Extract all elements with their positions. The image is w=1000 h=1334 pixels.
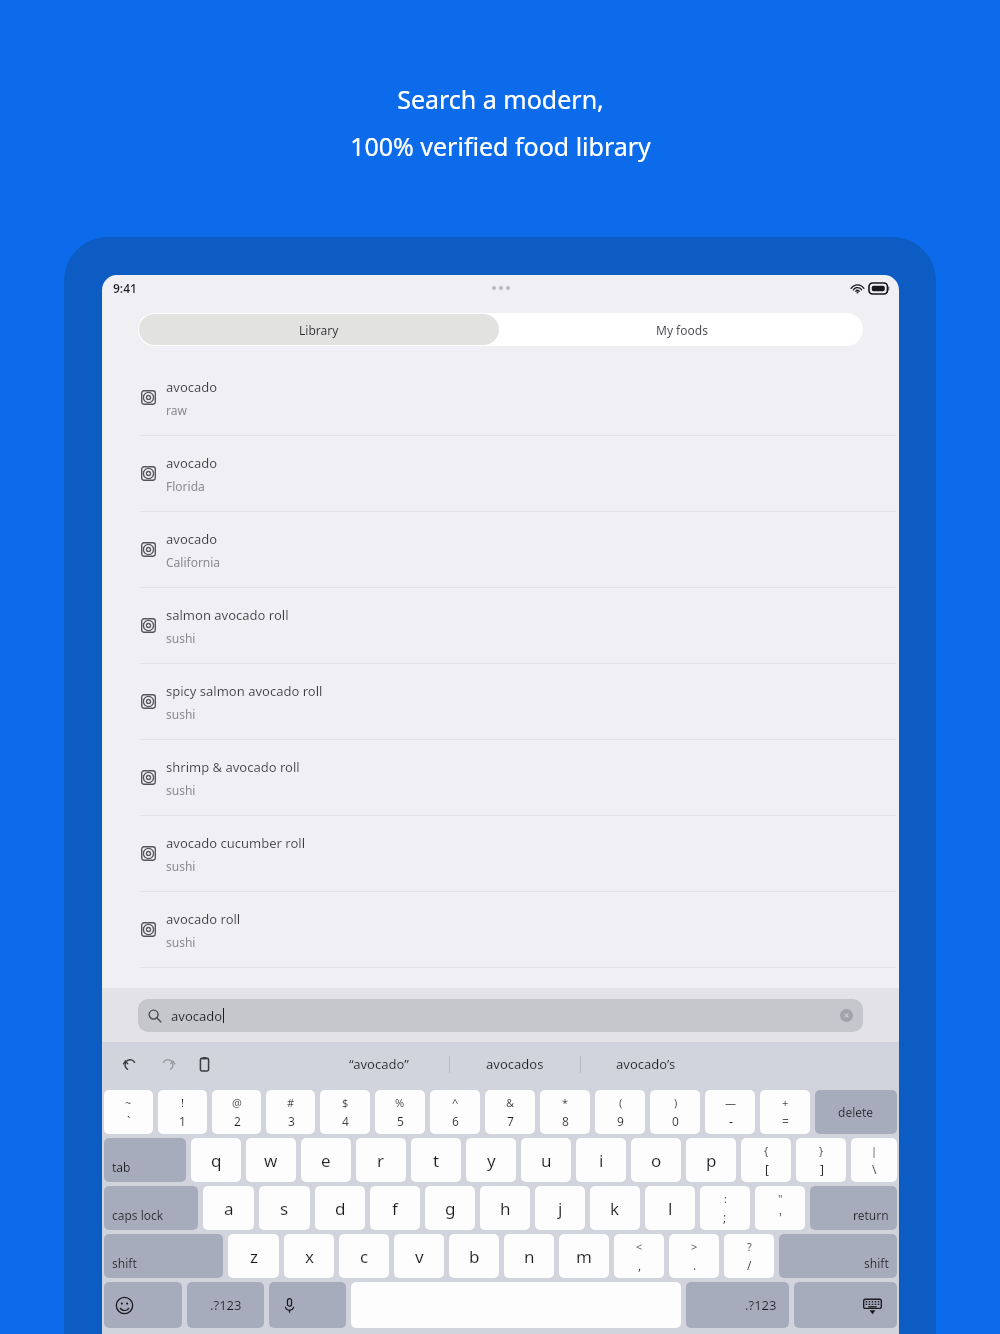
staticText: " <box>778 1191 783 1206</box>
button[interactable]: b <box>449 1234 499 1278</box>
button[interactable]: ^ <box>430 1090 480 1134</box>
staticText: @ <box>232 1095 242 1110</box>
button[interactable]: avocado <box>102 360 899 435</box>
button[interactable]: q <box>191 1138 241 1182</box>
button[interactable]: .?123 <box>686 1282 789 1328</box>
button[interactable]: * <box>540 1090 590 1134</box>
staticText: My foods <box>656 322 708 338</box>
staticText: ] <box>820 1161 824 1177</box>
button[interactable]: m <box>559 1234 609 1278</box>
button[interactable]: avocado smoothie <box>102 968 899 1043</box>
staticText: 7 <box>507 1113 514 1129</box>
staticText: / <box>747 1257 752 1273</box>
button[interactable]: } <box>796 1138 846 1182</box>
button[interactable]: f <box>370 1186 420 1230</box>
button[interactable]: shrimp & avocado roll <box>102 740 899 815</box>
button[interactable]: x <box>284 1234 334 1278</box>
button[interactable]: ? <box>724 1234 774 1278</box>
staticText: .?123 <box>745 1296 777 1314</box>
button[interactable]: o <box>631 1138 681 1182</box>
button[interactable]: avocado’s <box>581 1055 711 1073</box>
staticText: 9:41 <box>113 280 137 296</box>
staticText: p <box>706 1149 717 1172</box>
button[interactable]: return <box>810 1186 897 1230</box>
button[interactable]: e <box>301 1138 351 1182</box>
button[interactable]: avocado <box>138 999 863 1032</box>
button[interactable]: ) <box>650 1090 700 1134</box>
button[interactable]: spicy salmon avocado roll <box>102 664 899 739</box>
button[interactable]: r <box>356 1138 406 1182</box>
staticText: ? <box>747 1239 752 1254</box>
button[interactable]: shift <box>779 1234 897 1278</box>
staticText: avocado smoothie <box>166 986 279 1004</box>
button[interactable]: a <box>203 1186 254 1230</box>
button[interactable]: g <box>425 1186 475 1230</box>
button[interactable]: | <box>851 1138 897 1182</box>
button[interactable]: avocado <box>102 436 899 511</box>
button[interactable]: + <box>760 1090 810 1134</box>
button[interactable]: @ <box>212 1090 261 1134</box>
button[interactable]: ~ <box>104 1090 153 1134</box>
button[interactable]: My foods <box>500 313 863 346</box>
button[interactable]: avocado cucumber roll <box>102 816 899 891</box>
button[interactable]: i <box>576 1138 626 1182</box>
button[interactable]: salmon avocado roll <box>102 588 899 663</box>
button[interactable]: Library <box>139 314 499 345</box>
button[interactable]: Emoji <box>104 1282 182 1328</box>
button[interactable]: Undo <box>119 1053 141 1075</box>
staticText: sushi <box>166 706 196 722</box>
staticText: } <box>819 1143 824 1158</box>
button[interactable]: avocado roll <box>102 892 899 967</box>
button[interactable]: j <box>535 1186 585 1230</box>
button[interactable]: $ <box>320 1090 370 1134</box>
button[interactable]: .?123 <box>187 1282 264 1328</box>
button[interactable]: s <box>259 1186 310 1230</box>
staticText: z <box>250 1245 258 1268</box>
button[interactable]: " <box>755 1186 805 1230</box>
button[interactable]: “avocado” <box>309 1055 449 1073</box>
button[interactable]: shift <box>104 1234 223 1278</box>
button[interactable]: # <box>266 1090 315 1134</box>
button[interactable]: & <box>485 1090 535 1134</box>
staticText: q <box>211 1149 222 1172</box>
button[interactable]: ! <box>158 1090 207 1134</box>
button[interactable]: < <box>614 1234 664 1278</box>
button[interactable]: h <box>480 1186 530 1230</box>
staticText: drink <box>166 1010 196 1026</box>
button[interactable]: tab <box>104 1138 186 1182</box>
button[interactable]: % <box>375 1090 425 1134</box>
staticText: 8 <box>562 1113 569 1129</box>
button[interactable]: Redo <box>156 1053 178 1075</box>
staticText: l <box>668 1197 673 1220</box>
button[interactable]: k <box>590 1186 640 1230</box>
button[interactable]: Hide keyboard <box>794 1282 897 1328</box>
button[interactable]: avocados <box>450 1055 580 1073</box>
button[interactable]: delete <box>815 1090 897 1134</box>
button[interactable]: Clear search <box>840 1009 853 1022</box>
button[interactable]: { <box>741 1138 791 1182</box>
button[interactable]: v <box>394 1234 444 1278</box>
button[interactable]: z <box>228 1234 279 1278</box>
button[interactable]: c <box>339 1234 389 1278</box>
button[interactable]: > <box>669 1234 719 1278</box>
button[interactable]: Paste <box>193 1053 215 1075</box>
button[interactable]: avocado <box>102 512 899 587</box>
button[interactable]: ( <box>595 1090 645 1134</box>
button[interactable]: : <box>700 1186 750 1230</box>
button[interactable]: — <box>705 1090 755 1134</box>
button[interactable]: d <box>315 1186 365 1230</box>
button[interactable]: y <box>466 1138 516 1182</box>
button[interactable]: Dictation <box>269 1282 346 1328</box>
staticText: avocado <box>166 530 218 548</box>
button[interactable]: w <box>246 1138 296 1182</box>
button[interactable]: p <box>686 1138 736 1182</box>
button[interactable]: n <box>504 1234 554 1278</box>
button[interactable]: caps lock <box>104 1186 198 1230</box>
button[interactable]: l <box>645 1186 695 1230</box>
button[interactable]: t <box>411 1138 461 1182</box>
button[interactable]: u <box>521 1138 571 1182</box>
staticText: return <box>853 1207 889 1223</box>
staticText: x <box>305 1245 314 1268</box>
staticText: 0 <box>672 1113 679 1129</box>
